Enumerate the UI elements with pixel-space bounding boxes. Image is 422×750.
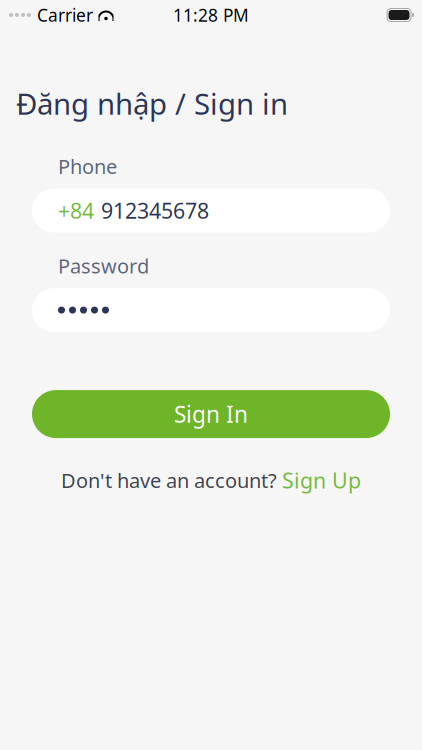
staticText: Sign In [174,399,248,429]
staticText: +84 [58,196,94,225]
staticText: Sign Up [282,466,361,494]
button[interactable]: +84 [32,188,390,232]
staticText: Don't have an account? [61,467,277,494]
staticText: 912345678 [101,196,209,225]
staticText: Đăng nhập / Sign in [16,84,288,123]
staticText: Carrier [37,3,93,26]
staticText: Phone [58,153,117,180]
staticText: 11:28 PM [173,3,249,26]
staticText: Password [58,252,149,279]
button[interactable] [32,288,390,332]
button[interactable]: Sign In [32,390,390,438]
button[interactable]: Don't have an account? [53,460,369,500]
